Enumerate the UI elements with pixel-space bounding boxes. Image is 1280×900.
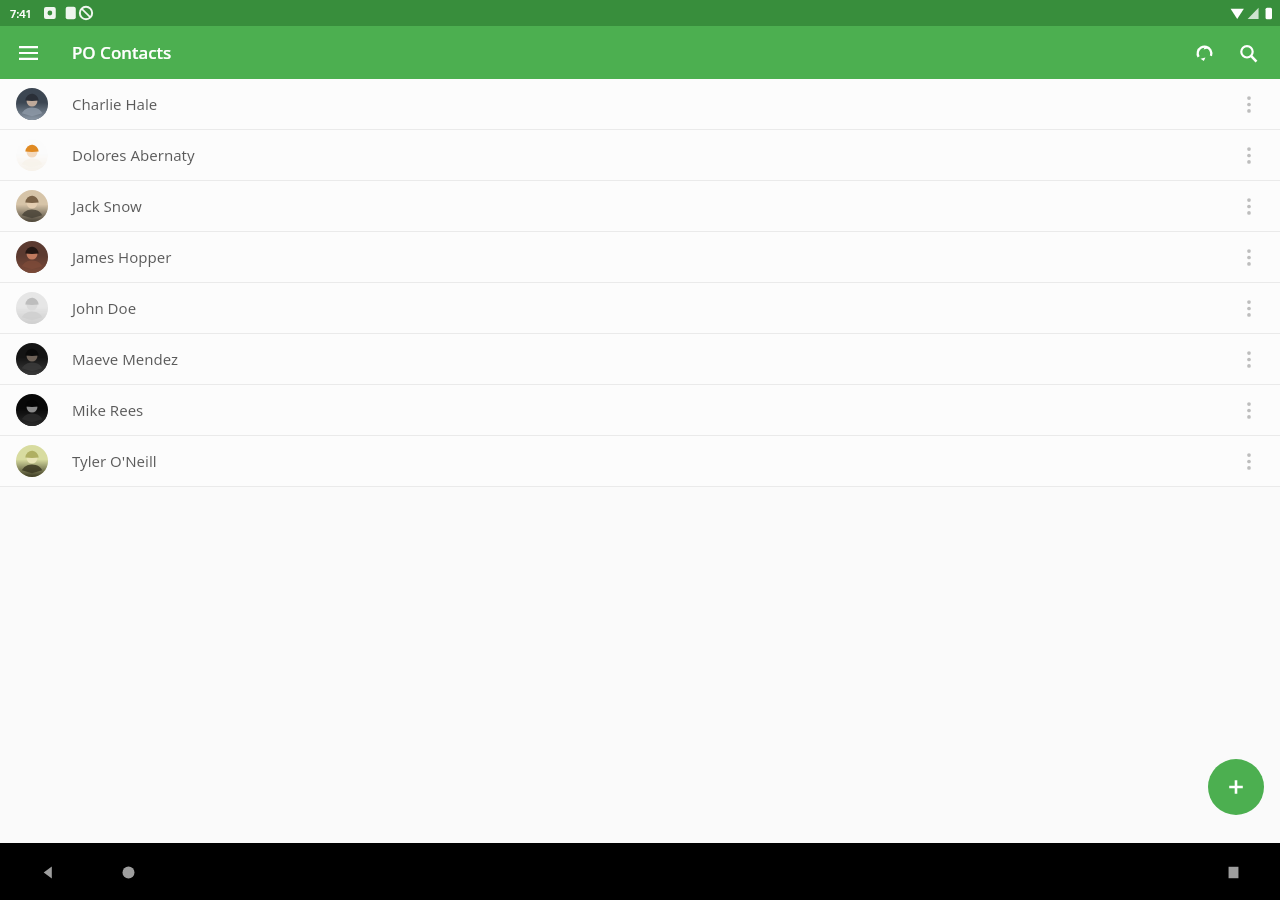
button[interactable]: Maeve Mendez [0, 334, 1280, 384]
staticText: 7:41 [10, 6, 32, 21]
staticText: Dolores Abernaty [72, 145, 1226, 165]
button[interactable]: Sync [1182, 31, 1226, 75]
button[interactable]: James Hopper [0, 232, 1280, 282]
staticText: PO Contacts [72, 41, 172, 64]
staticText: Jack Snow [72, 196, 1226, 216]
button[interactable]: Recent apps [1211, 850, 1255, 894]
button[interactable]: Back [26, 850, 70, 894]
button[interactable]: More options [1226, 385, 1272, 435]
button[interactable]: Dolores Abernaty [0, 130, 1280, 180]
button[interactable]: Tyler O'Neill [0, 436, 1280, 486]
button[interactable]: More options [1226, 334, 1272, 384]
button[interactable]: Mike Rees [0, 385, 1280, 435]
staticText: John Doe [72, 298, 1226, 318]
button[interactable]: More options [1226, 181, 1272, 231]
staticText: Maeve Mendez [72, 349, 1226, 369]
button[interactable]: Add contact [1208, 759, 1264, 815]
button[interactable]: More options [1226, 232, 1272, 282]
button[interactable]: More options [1226, 436, 1272, 486]
staticText: Charlie Hale [72, 94, 1226, 114]
button[interactable]: Charlie Hale [0, 79, 1280, 129]
button[interactable]: John Doe [0, 283, 1280, 333]
button[interactable]: More options [1226, 283, 1272, 333]
button[interactable]: More options [1226, 130, 1272, 180]
button[interactable]: Jack Snow [0, 181, 1280, 231]
staticText: Mike Rees [72, 400, 1226, 420]
button[interactable]: More options [1226, 79, 1272, 129]
button[interactable]: Open navigation drawer [8, 33, 48, 73]
staticText: James Hopper [72, 247, 1226, 267]
staticText: Tyler O'Neill [72, 451, 1226, 471]
button[interactable]: Search [1226, 31, 1270, 75]
button[interactable]: Home [106, 850, 150, 894]
